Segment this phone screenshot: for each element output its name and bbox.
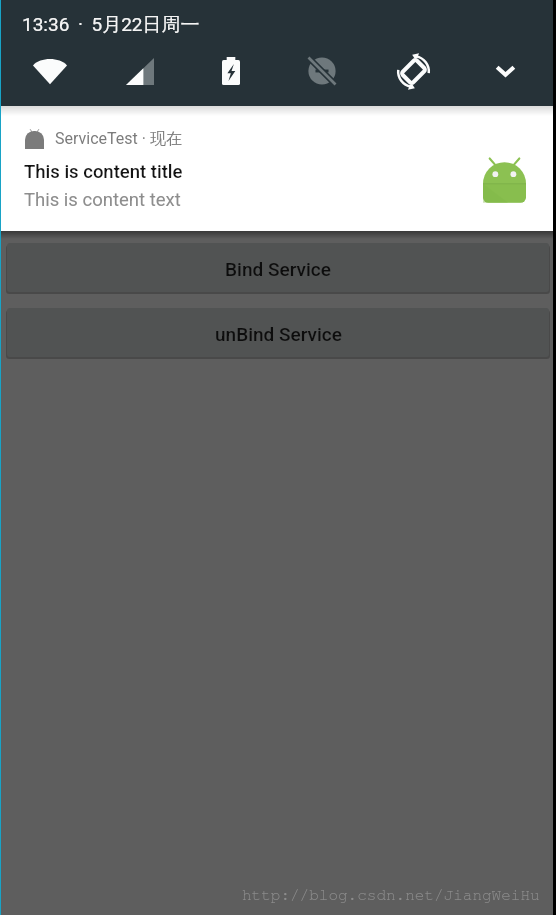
button[interactable]: Wi-Fi <box>28 49 72 93</box>
staticText: Bind Service <box>225 258 331 280</box>
staticText: 13:36 · 5月22日周一 <box>22 13 200 37</box>
staticText: http://blog.csdn.net/JiangWeiHu <box>242 887 540 903</box>
button[interactable]: unBind Service <box>7 308 549 357</box>
staticText: This is content title <box>24 161 183 183</box>
staticText: ServiceTest · 现在 <box>55 129 182 149</box>
staticText: This is content text <box>24 189 181 211</box>
button[interactable]: ServiceTest · 现在 <box>0 106 556 231</box>
button[interactable]: Auto rotate <box>391 49 435 93</box>
button[interactable]: Bind Service <box>7 243 549 292</box>
button[interactable]: Battery charging <box>209 49 253 93</box>
button[interactable]: Mobile signal <box>118 49 162 93</box>
staticText: unBind Service <box>215 323 342 345</box>
button[interactable]: Do not disturb <box>300 49 344 93</box>
button[interactable]: Expand quick settings <box>483 49 527 93</box>
